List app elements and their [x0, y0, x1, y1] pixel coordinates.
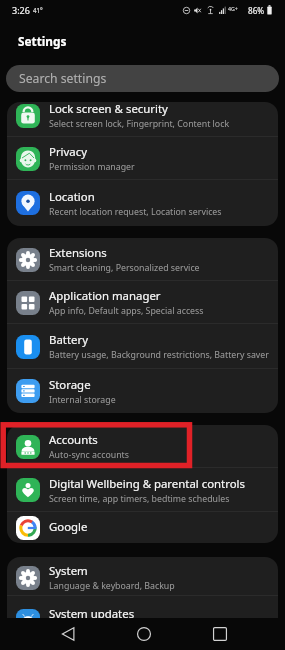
button[interactable]: Lock screen & security [7, 102, 278, 137]
staticText: Permission manager [49, 161, 135, 173]
button[interactable]: Storage [7, 369, 278, 413]
staticText: Location [49, 189, 95, 205]
button[interactable]: Google [7, 512, 278, 543]
button[interactable]: Accounts [7, 425, 278, 468]
staticText: Battery [49, 332, 88, 348]
staticText: Screen time, app timers, bedtime schedul… [49, 493, 230, 505]
staticText: Lock screen & security [49, 102, 168, 117]
button[interactable]: System [7, 557, 278, 596]
button[interactable]: Location [7, 180, 278, 226]
staticText: Update software [49, 623, 118, 635]
staticText: App info, Default apps, Special access [49, 305, 204, 317]
staticText: Auto-sync accounts [49, 449, 129, 461]
button[interactable]: Digital Wellbeing & parental controls [7, 468, 278, 512]
staticText: Accounts [49, 432, 98, 448]
staticText: Privacy [49, 144, 87, 160]
button[interactable]: Privacy [7, 137, 278, 180]
button[interactable]: Search settings [6, 65, 279, 92]
button[interactable]: Application manager [7, 281, 278, 324]
button[interactable]: Battery [7, 324, 278, 369]
button[interactable]: Recent apps [202, 618, 237, 650]
button[interactable]: Back [50, 618, 85, 650]
staticText: Internal storage [49, 394, 116, 406]
button[interactable]: Extensions [7, 238, 278, 281]
staticText: Application manager [49, 288, 161, 304]
staticText: Extensions [49, 245, 107, 261]
button[interactable]: Home [126, 618, 161, 650]
staticText: Smart cleaning, Personalized service [49, 262, 200, 274]
staticText: Search settings [19, 70, 107, 87]
staticText: Recent location request, Location servic… [49, 206, 222, 218]
staticText: Settings [18, 33, 67, 49]
staticText: 3:26 [12, 4, 30, 16]
staticText: 41° [33, 6, 43, 14]
staticText: Battery usage, Background restrictions, … [49, 349, 269, 361]
staticText: Digital Wellbeing & parental controls [49, 476, 245, 492]
staticText: Select screen lock, Fingerprint, Content… [49, 118, 230, 130]
staticText: System updates [49, 606, 135, 622]
staticText: Language & keyboard, Backup [49, 580, 175, 592]
staticText: System [49, 563, 88, 579]
staticText: 4G+ [228, 5, 238, 12]
staticText: Google [49, 519, 88, 535]
button[interactable]: System updates [7, 596, 278, 639]
staticText: 86% [248, 5, 265, 16]
staticText: Storage [49, 377, 91, 393]
